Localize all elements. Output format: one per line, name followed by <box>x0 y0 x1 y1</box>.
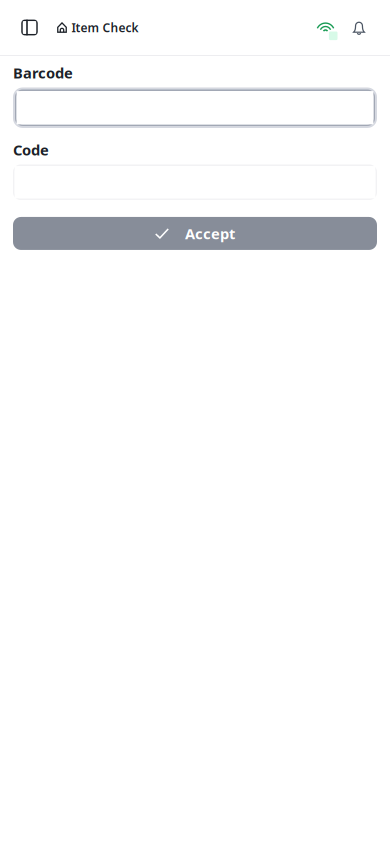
staticText: Code <box>13 140 49 159</box>
button[interactable]: Network status <box>312 0 342 54</box>
button[interactable]: Toggle sidebar <box>21 0 38 54</box>
staticText: Barcode <box>13 63 73 82</box>
staticText: Item Check <box>71 19 138 35</box>
staticText: Accept <box>185 224 235 243</box>
button[interactable]: Notifications <box>349 0 369 54</box>
button[interactable]: Accept <box>13 217 377 250</box>
